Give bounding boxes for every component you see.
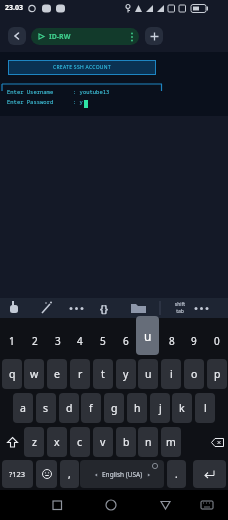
button[interactable] — [145, 27, 163, 45]
button[interactable] — [2, 427, 22, 457]
button[interactable]: w — [24, 359, 44, 389]
staticText: Enter Password : y — [7, 98, 83, 105]
button[interactable]: f — [81, 393, 101, 423]
button[interactable]: 5 — [91, 327, 114, 355]
button[interactable]: k — [172, 393, 192, 423]
staticText: j — [159, 401, 162, 415]
staticText: w — [30, 367, 39, 381]
button[interactable]: s — [36, 393, 56, 423]
staticText: o — [191, 367, 198, 381]
staticText: 5 — [100, 334, 106, 348]
button[interactable]: e — [47, 359, 67, 389]
staticText: q — [9, 367, 16, 381]
staticText: g — [111, 401, 118, 415]
button[interactable]: , — [60, 460, 79, 488]
button[interactable]: v — [93, 427, 113, 457]
staticText: 7 — [146, 334, 152, 348]
button[interactable]: m — [161, 427, 181, 457]
button[interactable] — [207, 427, 227, 457]
staticText: 0 — [214, 334, 220, 348]
button[interactable]: 2 — [23, 327, 46, 355]
staticText: n — [145, 435, 152, 449]
button[interactable]: t — [93, 359, 113, 389]
button[interactable]: ID-RW — [31, 28, 139, 45]
staticText: e — [54, 367, 60, 381]
button[interactable]: English (USA) — [80, 460, 164, 488]
button[interactable]: x — [47, 427, 67, 457]
staticText: y — [123, 367, 129, 381]
staticText: k — [179, 401, 185, 415]
staticText: b — [123, 435, 130, 449]
button[interactable]: z — [24, 427, 44, 457]
staticText: 23.03 — [5, 3, 23, 13]
button[interactable]: b — [116, 427, 136, 457]
button[interactable]: 7 — [137, 327, 160, 355]
button[interactable]: l — [195, 393, 215, 423]
staticText: , — [68, 467, 71, 481]
staticText: d — [66, 401, 73, 415]
staticText: p — [214, 367, 221, 381]
button[interactable]: CREATE SSH ACCOUNT — [8, 60, 156, 75]
staticText: 8 — [169, 334, 175, 348]
button[interactable]: 9 — [182, 327, 205, 355]
button[interactable]: 6 — [114, 327, 137, 355]
staticText: s — [43, 401, 49, 415]
staticText: Enter Username : youtube13 — [7, 88, 110, 95]
button[interactable]: p — [207, 359, 227, 389]
staticText: t — [101, 367, 105, 381]
button[interactable]: 4 — [68, 327, 91, 355]
button[interactable]: d — [59, 393, 79, 423]
button[interactable]: u — [138, 359, 158, 389]
staticText: l — [204, 401, 207, 415]
button[interactable] — [8, 27, 26, 45]
button[interactable]: 8 — [160, 327, 183, 355]
button[interactable]: 3 — [46, 327, 69, 355]
staticText: h — [134, 401, 141, 415]
staticText: u — [144, 328, 152, 344]
button[interactable] — [99, 493, 123, 517]
staticText: 1 — [9, 334, 15, 348]
staticText: 2 — [32, 334, 38, 348]
button[interactable]: ?123 — [2, 460, 33, 488]
staticText: c — [77, 435, 83, 449]
staticText: v — [100, 435, 106, 449]
button[interactable] — [193, 460, 226, 488]
staticText: z — [32, 435, 37, 449]
button[interactable]: j — [150, 393, 170, 423]
button[interactable]: 1 — [0, 327, 23, 355]
staticText: x — [54, 435, 60, 449]
staticText: r — [78, 367, 83, 381]
button[interactable]: a — [13, 393, 33, 423]
button[interactable]: g — [104, 393, 124, 423]
staticText: English (USA) — [102, 470, 143, 479]
staticText: . — [175, 467, 178, 481]
button[interactable]: q — [2, 359, 22, 389]
staticText: ?123 — [9, 469, 26, 479]
staticText: shift tab — [168, 301, 192, 315]
button[interactable]: h — [127, 393, 147, 423]
staticText: 4 — [77, 334, 83, 348]
button[interactable] — [36, 460, 57, 488]
staticText: u — [145, 367, 152, 381]
staticText: 3 — [55, 334, 61, 348]
staticText: {} — [100, 302, 108, 316]
staticText: a — [20, 401, 26, 415]
staticText: m — [166, 435, 176, 449]
button[interactable]: o — [184, 359, 204, 389]
staticText: ID-RW — [49, 32, 71, 42]
staticText: 9 — [191, 334, 197, 348]
staticText: 6 — [123, 334, 129, 348]
button[interactable]: n — [138, 427, 158, 457]
button[interactable]: 0 — [205, 327, 228, 355]
button[interactable]: . — [167, 460, 186, 488]
button[interactable]: i — [161, 359, 181, 389]
button[interactable] — [153, 493, 177, 517]
staticText: f — [89, 401, 93, 415]
staticText: CREATE SSH ACCOUNT — [53, 64, 112, 71]
button[interactable]: r — [70, 359, 90, 389]
button[interactable]: y — [116, 359, 136, 389]
button[interactable]: c — [70, 427, 90, 457]
staticText: i — [170, 367, 173, 381]
button[interactable] — [45, 493, 69, 517]
